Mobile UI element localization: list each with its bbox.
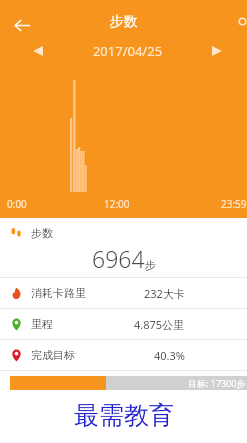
button[interactable]: 完成目标 (0, 340, 247, 370)
staticText: 23:59 (221, 197, 247, 211)
staticText: 2017/04/25 (49, 42, 206, 60)
staticText: 4.875公里 (134, 317, 185, 332)
staticText: 12:00 (104, 197, 130, 211)
staticText: 最需教育 (74, 400, 174, 431)
button[interactable]: 步数 (0, 218, 247, 277)
staticText: 0:00 (7, 197, 27, 211)
staticText: 里程 (31, 317, 53, 331)
staticText: 步数 (31, 226, 53, 240)
staticText: 步数 (0, 13, 247, 31)
button[interactable]: 消耗卡路里 (0, 278, 247, 308)
button[interactable]: Previous day (27, 40, 49, 62)
button[interactable]: 里程 (0, 309, 247, 339)
staticText: 40.3% (154, 348, 185, 363)
staticText: 完成目标 (31, 348, 75, 362)
staticText: 消耗卡路里 (31, 286, 86, 300)
staticText: 步 (145, 258, 156, 272)
button[interactable]: 目标: 17300步 (10, 376, 247, 390)
button[interactable]: Next day (206, 40, 228, 62)
staticText: 232大卡 (144, 286, 185, 301)
staticText: 6964 (92, 243, 145, 274)
staticText: 目标: 17300步 (188, 377, 246, 389)
button[interactable]: Back (6, 9, 38, 41)
